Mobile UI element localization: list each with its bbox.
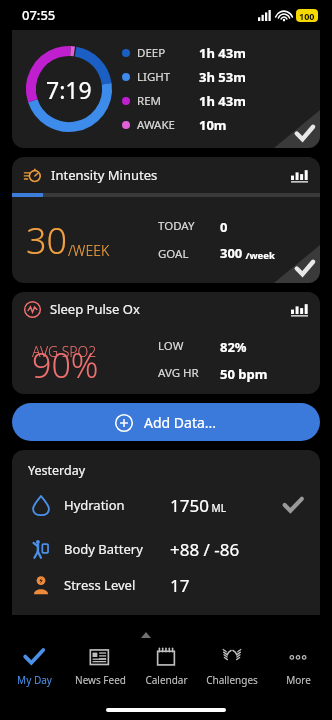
staticText: 10m xyxy=(199,116,227,134)
staticText: Sleep Pulse Ox xyxy=(50,300,140,318)
button[interactable]: News Feed xyxy=(68,638,132,694)
staticText: 50 bpm xyxy=(220,365,268,383)
button[interactable]: View chart xyxy=(291,168,308,183)
staticText: 1h 43m xyxy=(199,44,246,62)
button[interactable]: Stress Level xyxy=(12,571,320,599)
staticText: 100 xyxy=(299,10,315,22)
button[interactable]: Body Battery xyxy=(12,527,320,571)
button[interactable]: Yesterday xyxy=(12,450,320,615)
staticText: REM xyxy=(137,93,199,109)
staticText: 1750 xyxy=(170,494,209,517)
staticText: ML xyxy=(209,501,226,515)
staticText: News Feed xyxy=(75,673,126,687)
button[interactable]: Hydration xyxy=(12,483,320,527)
staticText: Body Battery xyxy=(64,540,170,558)
button[interactable]: Intensity Minutes xyxy=(12,157,320,283)
staticText: 17 xyxy=(170,574,190,597)
staticText: 0 xyxy=(220,218,228,236)
staticText: Yesterday xyxy=(28,462,86,479)
staticText: 7:19 xyxy=(46,74,92,105)
staticText: +88 / -86 xyxy=(170,538,240,561)
staticText: AWAKE xyxy=(137,117,199,133)
staticText: LOW xyxy=(158,338,220,354)
button[interactable]: Calendar xyxy=(134,638,198,694)
staticText: AVG SPO2 xyxy=(32,342,97,361)
button[interactable]: Add Data... xyxy=(12,403,320,441)
staticText: Hydration xyxy=(64,496,170,514)
staticText: LIGHT xyxy=(137,69,199,85)
staticText: More xyxy=(286,673,311,687)
staticText: AVG HR xyxy=(158,365,220,381)
staticText: /WEEK xyxy=(68,241,110,260)
staticText: 300 xyxy=(220,244,243,262)
button[interactable]: View chart xyxy=(291,302,308,317)
button[interactable]: Challenges xyxy=(200,638,264,694)
staticText: 3h 53m xyxy=(199,68,246,86)
staticText: My Day xyxy=(17,673,52,687)
staticText: 82% xyxy=(220,338,247,356)
staticText: 30 xyxy=(26,216,68,265)
staticText: Intensity Minutes xyxy=(51,166,158,184)
staticText: 07:55 xyxy=(22,6,56,24)
button[interactable]: 7:19 xyxy=(12,30,320,148)
button[interactable]: Sleep Pulse Ox xyxy=(12,292,320,394)
staticText: 90% xyxy=(32,342,99,388)
staticText: Calendar xyxy=(145,673,188,687)
staticText: TODAY xyxy=(158,218,220,234)
button[interactable]: My Day xyxy=(2,638,66,694)
button[interactable]: More xyxy=(266,638,330,694)
staticText: /week xyxy=(243,249,275,262)
staticText: Stress Level xyxy=(64,576,170,594)
staticText: Add Data... xyxy=(144,413,217,432)
staticText: DEEP xyxy=(137,45,199,61)
staticText: GOAL xyxy=(158,246,220,262)
staticText: 1h 43m xyxy=(199,92,246,110)
staticText: Challenges xyxy=(206,673,258,687)
